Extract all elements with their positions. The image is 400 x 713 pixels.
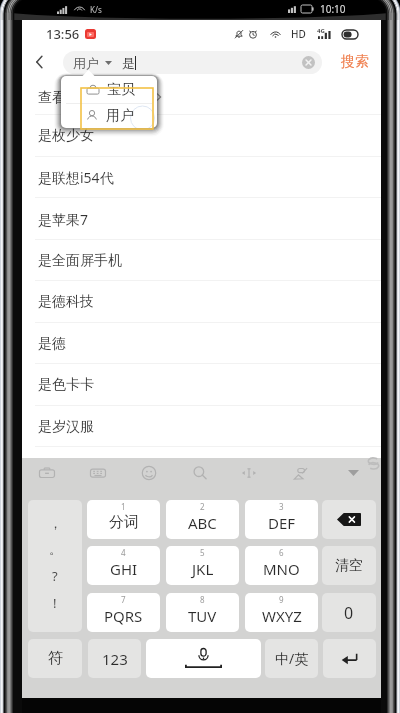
button[interactable]: Clipboard <box>26 458 68 488</box>
staticText: HD <box>291 27 306 41</box>
staticText: 13:56 <box>46 25 80 43</box>
staticText: K/s <box>90 4 102 15</box>
staticText: JKL <box>192 559 214 579</box>
staticText: 是全面屏手机 <box>38 252 122 270</box>
staticText: MNO <box>263 559 300 579</box>
button[interactable]: Keyboard layout <box>77 458 119 488</box>
staticText: 4 <box>121 547 126 558</box>
button[interactable]: 1 <box>87 500 160 539</box>
staticText: ? <box>52 567 58 585</box>
staticText: 是联想i54代 <box>38 168 114 187</box>
staticText: 中/英 <box>275 649 309 668</box>
staticText: 是德 <box>38 335 66 353</box>
staticText: PQRS <box>104 606 143 626</box>
button[interactable]: 是苹果7 <box>22 198 381 240</box>
button[interactable]: 是全面屏手机 <box>22 240 381 281</box>
staticText: 是德科技 <box>38 293 94 311</box>
button[interactable]: 是德 <box>22 323 381 364</box>
staticText: GHI <box>110 559 138 579</box>
button[interactable]: Backspace <box>322 500 376 539</box>
button[interactable]: 5 <box>166 546 239 585</box>
button[interactable]: 9 <box>245 593 318 632</box>
button[interactable]: 搜索 <box>341 48 369 76</box>
button[interactable]: 0 <box>322 593 376 632</box>
button[interactable]: 用户 <box>63 51 322 74</box>
button[interactable]: Hide keyboard <box>335 458 371 488</box>
staticText: 0 <box>344 602 354 624</box>
button[interactable]: 是岁汉服 <box>22 406 381 447</box>
staticText: ， <box>49 515 62 531</box>
staticText: 9 <box>279 594 284 605</box>
button[interactable]: 7 <box>87 593 160 632</box>
button[interactable]: 清空 <box>322 546 376 585</box>
staticText: DEF <box>268 513 296 533</box>
staticText: 是 <box>122 55 135 71</box>
button[interactable]: 是联想i54代 <box>22 157 381 198</box>
staticText: 7 <box>121 594 126 605</box>
staticText: 4G <box>317 27 325 35</box>
staticText: ! <box>53 594 57 612</box>
button[interactable]: 4 <box>87 546 160 585</box>
button[interactable]: Clear text <box>297 51 320 74</box>
staticText: 1 <box>121 501 126 512</box>
staticText: ABC <box>188 513 217 533</box>
button[interactable]: Emoji <box>128 458 170 488</box>
button[interactable]: 2 <box>166 500 239 539</box>
staticText: 清空 <box>335 557 363 575</box>
staticText: 符 <box>48 649 63 668</box>
staticText: 3 <box>279 501 284 512</box>
button[interactable]: Sogou input <box>366 456 381 471</box>
button[interactable]: 查看 <box>22 78 381 115</box>
staticText: WXYZ <box>262 606 302 626</box>
staticText: 123 <box>102 649 128 669</box>
button[interactable]: Cursor <box>228 458 270 488</box>
staticText: 是色卡卡 <box>38 376 94 394</box>
button[interactable]: Space <box>146 639 261 678</box>
button[interactable]: 是色卡卡 <box>22 364 381 406</box>
button[interactable]: Search <box>179 458 221 488</box>
button[interactable]: 中/英 <box>265 639 318 678</box>
button[interactable]: Handwriting <box>280 458 322 488</box>
staticText: 是岁汉服 <box>38 418 94 436</box>
staticText: 搜索 <box>341 53 369 71</box>
button[interactable]: 3 <box>245 500 318 539</box>
staticText: 10:10 <box>320 2 346 16</box>
staticText: 用户 <box>106 107 134 125</box>
button[interactable]: 符 <box>28 639 82 678</box>
button[interactable]: 用户 <box>61 104 157 128</box>
button[interactable]: Enter <box>323 639 376 678</box>
button[interactable]: Back <box>22 48 58 76</box>
staticText: 分词 <box>109 513 139 532</box>
button[interactable]: ， <box>28 500 82 632</box>
button[interactable]: 123 <box>88 639 141 678</box>
staticText: 是枚少女 <box>38 127 94 145</box>
button[interactable]: 8 <box>166 593 239 632</box>
staticText: 查看 <box>38 89 66 107</box>
staticText: 5 <box>200 547 205 558</box>
button[interactable]: 宝贝 <box>61 76 157 103</box>
staticText: TUV <box>188 606 217 626</box>
staticText: 8 <box>200 594 205 605</box>
staticText: 。 <box>49 541 62 557</box>
staticText: 2 <box>200 501 205 512</box>
staticText: 宝贝 <box>107 81 135 99</box>
staticText: 是苹果7 <box>38 210 89 229</box>
button[interactable]: 是枚少女 <box>22 115 381 157</box>
button[interactable]: 是德科技 <box>22 281 381 323</box>
staticText: 6 <box>279 547 284 558</box>
button[interactable]: 6 <box>245 546 318 585</box>
staticText: 用户 <box>73 55 99 71</box>
